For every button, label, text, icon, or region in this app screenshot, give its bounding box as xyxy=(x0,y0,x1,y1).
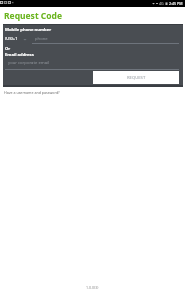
staticText: 2:45 PM xyxy=(169,1,183,6)
button[interactable]: your corporate email xyxy=(5,59,179,69)
staticText: 1.0.0(3) xyxy=(86,285,99,290)
staticText: REQUEST xyxy=(127,75,146,81)
staticText: 4G xyxy=(159,1,164,6)
button[interactable]: phone xyxy=(32,35,179,43)
button[interactable]: REQUEST xyxy=(93,71,179,84)
staticText: Or xyxy=(5,46,11,52)
button[interactable]: Select country code xyxy=(4,35,28,43)
staticText: your corporate email xyxy=(8,60,50,66)
button[interactable]: Have a username and password? xyxy=(4,90,60,95)
staticText: phone xyxy=(35,36,48,42)
staticText: Have a username and password? xyxy=(4,90,60,95)
staticText: Email address xyxy=(5,52,34,58)
staticText: Mobile phone number xyxy=(5,27,52,33)
staticText: (US)+1 xyxy=(5,36,18,42)
staticText: Request Code xyxy=(4,10,63,22)
